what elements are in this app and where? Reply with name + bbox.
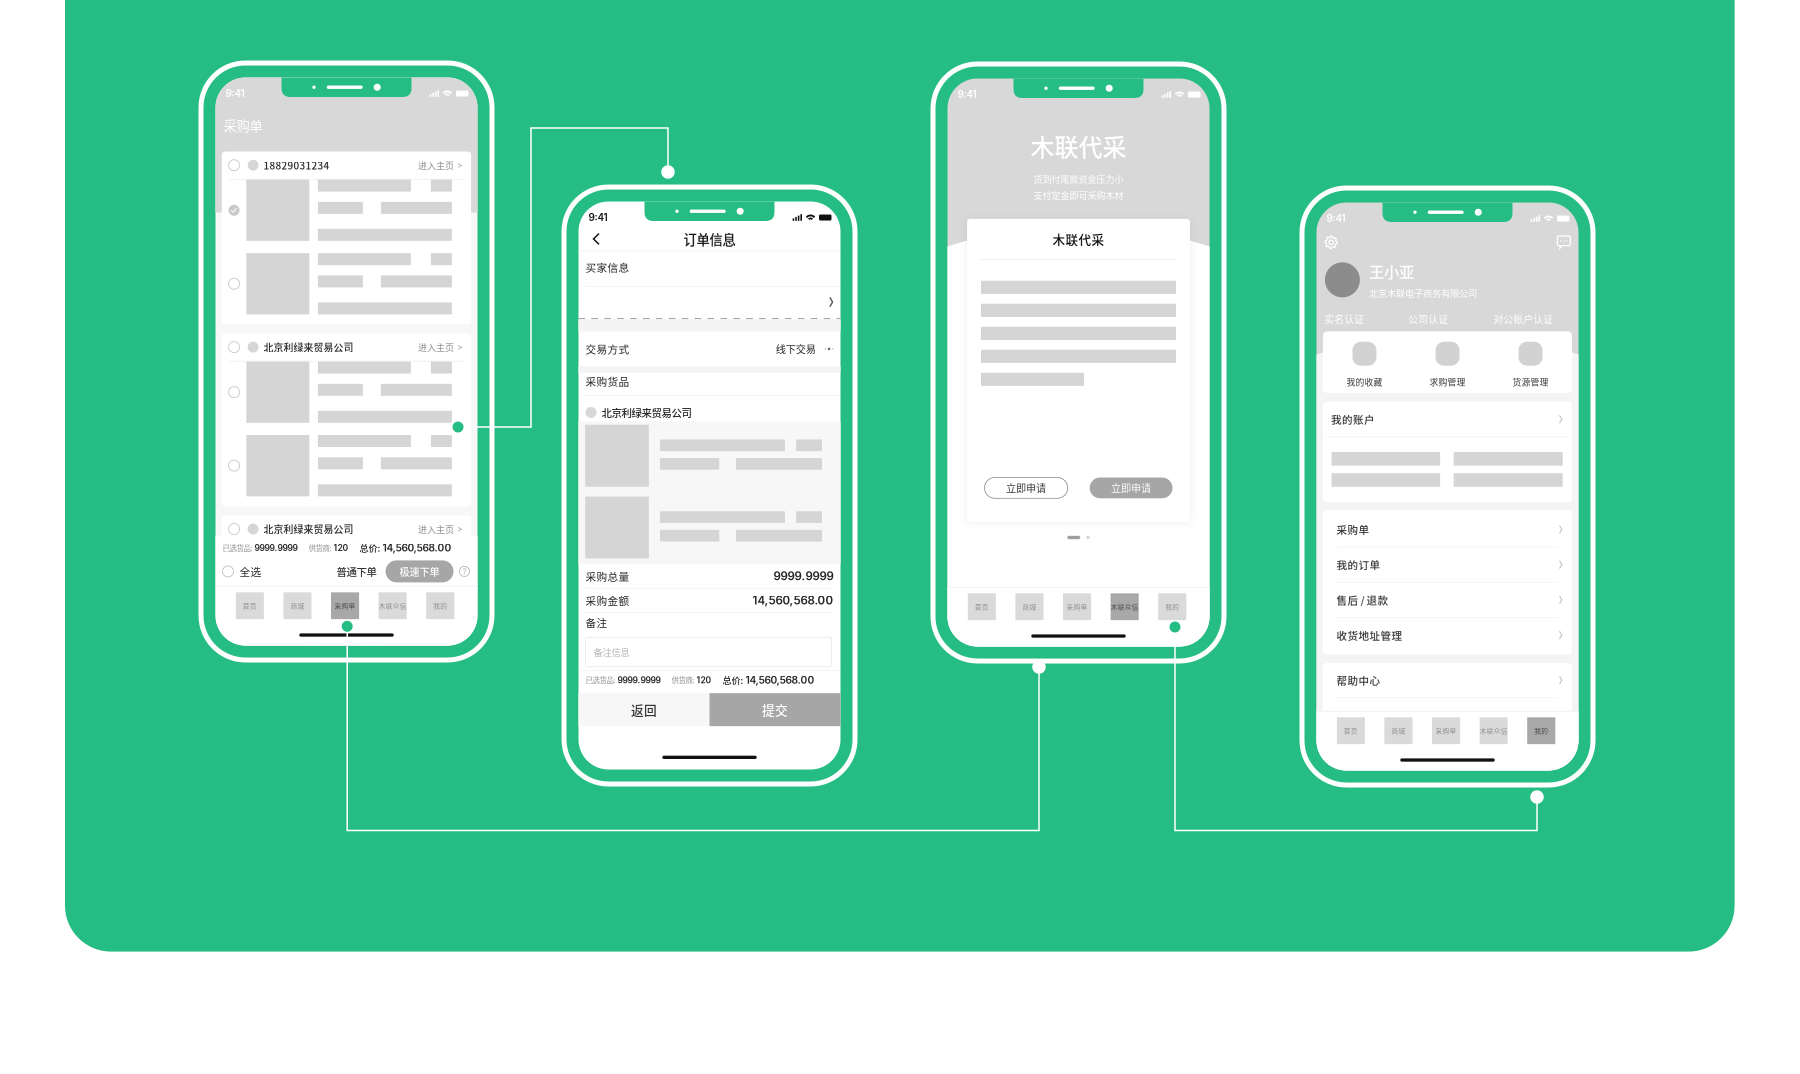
- button[interactable]: 北京利绿来贸易公司: [222, 333, 471, 361]
- staticText: 货源管理: [1512, 375, 1548, 388]
- staticText: 备注: [585, 615, 607, 630]
- staticText: 我的收藏: [1346, 375, 1382, 388]
- staticText: 买家信息: [585, 259, 629, 275]
- button[interactable]: 交易方式: [578, 331, 840, 366]
- staticText: >: [457, 524, 463, 534]
- staticText: 采购货品: [585, 373, 629, 389]
- button[interactable]: 帮助中心: [1323, 663, 1572, 697]
- staticText: 北京木联电子商务有限公司: [1369, 286, 1477, 300]
- staticText: 实名认证: [1324, 312, 1364, 326]
- staticText: 我的账户: [1331, 412, 1375, 427]
- button[interactable]: 我的: [1158, 593, 1186, 620]
- staticText: 提交: [762, 700, 788, 719]
- staticText: 我的: [1534, 726, 1548, 736]
- button[interactable]: 货源管理: [1489, 331, 1572, 393]
- staticText: 订单信息: [683, 229, 735, 249]
- staticText: 木联代采: [1030, 128, 1126, 163]
- staticText: 首页: [1344, 726, 1358, 736]
- staticText: 采购单: [335, 601, 356, 611]
- staticText: 9999.9999: [773, 569, 833, 583]
- staticText: 售后 / 退款: [1336, 592, 1388, 607]
- staticText: 支付定金即可采购木材: [1033, 188, 1123, 201]
- button[interactable]: 木联众信: [1111, 593, 1139, 620]
- button[interactable]: 首页: [236, 592, 264, 619]
- staticText: 我的订单: [1336, 557, 1380, 572]
- button[interactable]: 普通下单: [336, 558, 376, 584]
- button[interactable]: Messages: [1557, 235, 1571, 249]
- button[interactable]: 提交: [709, 693, 840, 726]
- staticText: 关于木材现头: [1336, 708, 1402, 723]
- staticText: 采购单: [1066, 602, 1087, 612]
- button[interactable]: 售后 / 退款: [1323, 583, 1572, 617]
- button[interactable]: [578, 287, 840, 317]
- staticText: 帮助中心: [1336, 672, 1380, 688]
- button[interactable]: 全选: [222, 558, 261, 584]
- staticText: 供货商:: [308, 542, 333, 553]
- staticText: 14,560,568.00: [752, 593, 833, 607]
- staticText: 已选货品:: [585, 675, 617, 685]
- staticText: 9:41: [957, 88, 976, 100]
- staticText: 总价:: [722, 673, 745, 687]
- staticText: 首页: [243, 601, 257, 611]
- button[interactable]: 我的: [426, 592, 454, 619]
- button[interactable]: 关于木材现头: [1323, 698, 1572, 733]
- staticText: 9:41: [588, 211, 607, 223]
- button[interactable]: 木联众信: [379, 592, 407, 619]
- staticText: >: [457, 342, 463, 352]
- button[interactable]: 极速下单: [385, 560, 453, 582]
- staticText: 收货地址管理: [1336, 627, 1402, 643]
- button[interactable]: 木联众信: [1480, 717, 1508, 744]
- button[interactable]: Back: [584, 228, 608, 250]
- staticText: 全选: [239, 564, 261, 579]
- staticText: 木联众信: [1480, 726, 1508, 736]
- staticText: ?: [462, 567, 466, 576]
- button[interactable]: 首页: [1337, 717, 1365, 744]
- staticText: 立即申请: [1006, 481, 1046, 495]
- button[interactable]: Settings: [1324, 235, 1338, 249]
- button[interactable]: 商城: [1384, 717, 1412, 744]
- button[interactable]: 商城: [283, 592, 311, 619]
- button[interactable]: 采购单: [1323, 512, 1572, 547]
- staticText: 公司认证: [1408, 312, 1448, 326]
- button[interactable]: 商城: [1015, 593, 1043, 620]
- staticText: 木联众信: [1111, 602, 1139, 612]
- button[interactable]: 求购管理: [1406, 331, 1489, 393]
- button[interactable]: 我的订单: [1323, 547, 1572, 582]
- button[interactable]: 18829031234: [222, 151, 471, 179]
- staticText: 立即申请: [1111, 481, 1151, 495]
- button[interactable]: 北京利绿来贸易公司: [222, 515, 471, 543]
- staticText: 返回: [631, 700, 657, 719]
- staticText: 9:41: [225, 87, 244, 99]
- button[interactable]: 首页: [968, 593, 996, 620]
- staticText: 采购单: [223, 115, 262, 135]
- staticText: 货到付尾款资金压力小: [1033, 172, 1123, 185]
- staticText: 18829031234: [264, 158, 330, 172]
- staticText: 供货商:: [671, 675, 696, 685]
- staticText: 14,560,568.00: [382, 542, 451, 554]
- staticText: 我的: [1165, 602, 1179, 612]
- staticText: 9999.9999: [254, 543, 297, 553]
- staticText: 总价:: [359, 541, 382, 554]
- staticText: 进入主页: [418, 159, 454, 172]
- staticText: 采购单: [1435, 726, 1456, 736]
- button[interactable]: 采购单: [331, 592, 359, 619]
- button[interactable]: 采购单: [1432, 717, 1460, 744]
- button[interactable]: 采购单: [1063, 593, 1091, 620]
- staticText: 我的: [433, 601, 447, 611]
- button[interactable]: 我的收藏: [1323, 331, 1406, 393]
- button[interactable]: 我的: [1527, 717, 1555, 744]
- button[interactable]: 立即申请: [1090, 477, 1172, 498]
- staticText: 120: [696, 675, 711, 685]
- button[interactable]: 收货地址管理: [1323, 618, 1572, 652]
- staticText: 王小亚: [1369, 260, 1414, 282]
- button[interactable]: 返回: [578, 693, 709, 726]
- staticText: 采购金额: [585, 593, 629, 608]
- staticText: 9:41: [1326, 212, 1345, 224]
- button[interactable]: 我的账户: [1323, 402, 1572, 436]
- staticText: 线下交易: [776, 342, 816, 356]
- staticText: 进入主页: [418, 522, 454, 535]
- staticText: 14,560,568.00: [745, 674, 814, 686]
- button[interactable]: Help: [458, 565, 470, 577]
- button[interactable]: 立即申请: [984, 477, 1068, 498]
- staticText: 北京利绿来贸易公司: [601, 405, 691, 420]
